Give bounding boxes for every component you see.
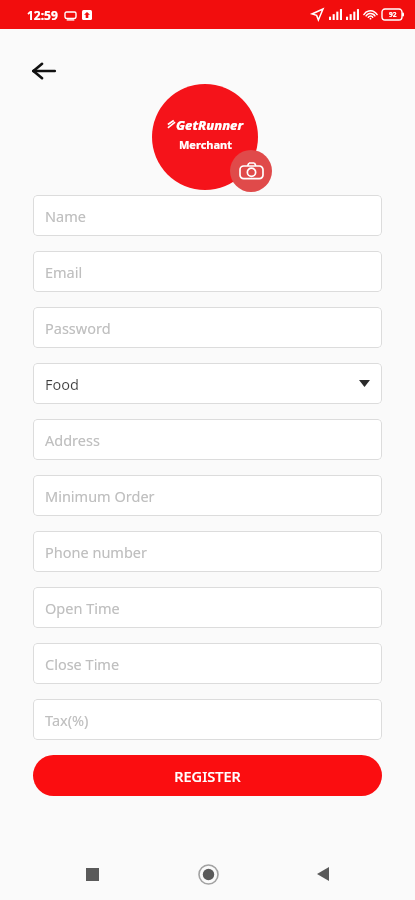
button[interactable]: Tax(%)	[33, 699, 382, 740]
button[interactable]: Back	[299, 850, 347, 898]
staticText: 92	[389, 10, 397, 19]
staticText: GetRunner	[176, 116, 244, 134]
staticText: Phone number	[45, 542, 370, 562]
button[interactable]: Phone number	[33, 531, 382, 572]
button[interactable]: Email	[33, 251, 382, 292]
staticText: Tax(%)	[45, 710, 370, 730]
staticText: Merchant	[179, 137, 232, 152]
button[interactable]: Home	[184, 850, 232, 898]
staticText: Address	[45, 430, 370, 450]
staticText: Close Time	[45, 654, 370, 674]
button[interactable]: Merchant logo	[152, 84, 258, 190]
button[interactable]: Minimum Order	[33, 475, 382, 516]
staticText: Minimum Order	[45, 486, 370, 506]
button[interactable]: Password	[33, 307, 382, 348]
staticText: Food	[45, 374, 359, 394]
button[interactable]: REGISTER	[33, 755, 382, 796]
button[interactable]: Address	[33, 419, 382, 460]
staticText: Email	[45, 262, 370, 282]
button[interactable]: Name	[33, 195, 382, 236]
staticText: REGISTER	[174, 766, 241, 786]
button[interactable]: Back	[22, 49, 66, 93]
staticText: Open Time	[45, 598, 370, 618]
staticText: 12:59	[27, 7, 58, 23]
button[interactable]: Open Time	[33, 587, 382, 628]
staticText: Name	[45, 206, 370, 226]
button[interactable]: Change photo	[230, 150, 272, 192]
button[interactable]: Recent apps	[68, 850, 116, 898]
button[interactable]: Close Time	[33, 643, 382, 684]
button[interactable]: Food	[33, 363, 382, 404]
staticText: Password	[45, 318, 370, 338]
